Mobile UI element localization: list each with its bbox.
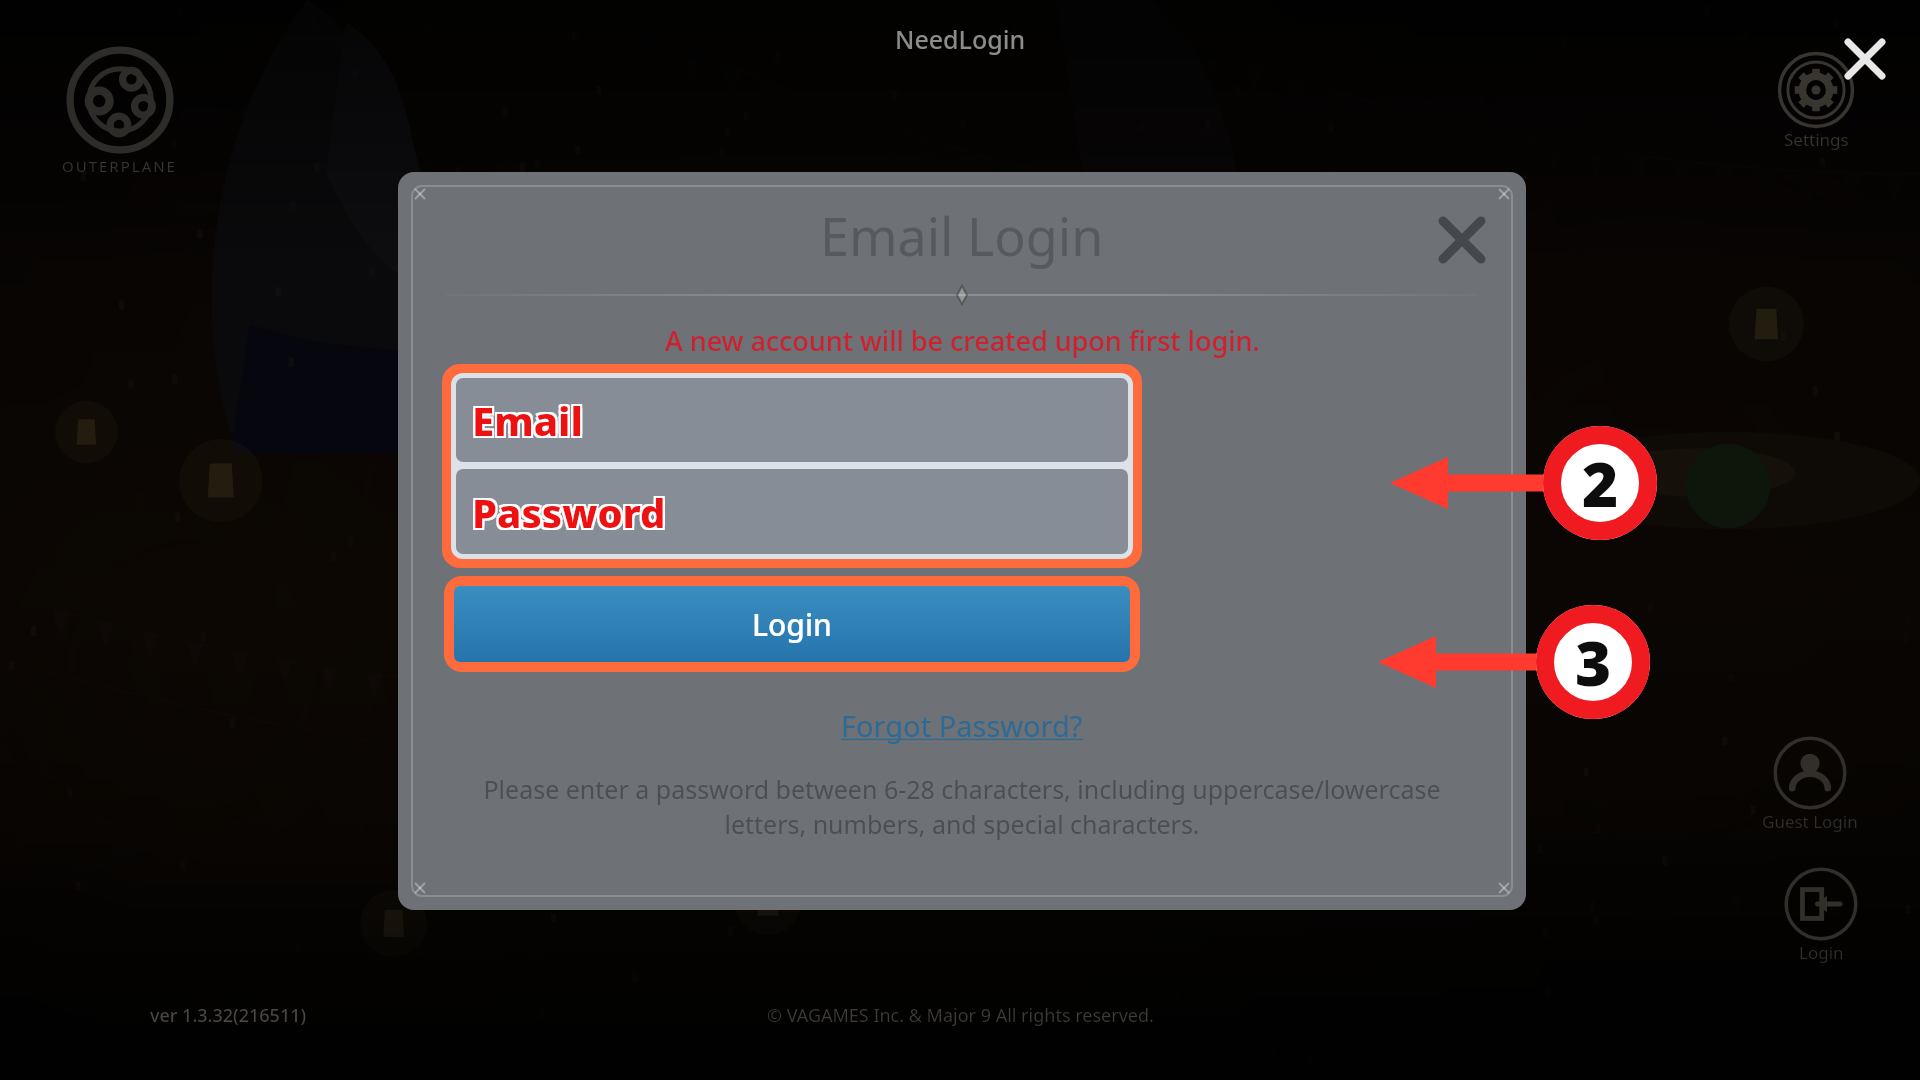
staticText: Email — [470, 395, 581, 449]
button[interactable]: Guest Login — [1756, 730, 1864, 839]
staticText: Email — [474, 395, 585, 449]
button[interactable]: Close — [1838, 32, 1892, 86]
staticText: Password — [474, 487, 668, 541]
staticText: Forgot Password? — [841, 706, 1083, 745]
staticText: Login — [752, 604, 832, 645]
staticText: Email — [474, 391, 585, 445]
staticText: © VAGAMES Inc. & Major 9 All rights rese… — [767, 1003, 1154, 1028]
button[interactable]: Email — [456, 378, 1128, 462]
staticText: Email Login — [820, 200, 1104, 271]
staticText: Please enter a password between 6-28 cha… — [450, 772, 1474, 842]
staticText: Password — [470, 483, 664, 537]
button[interactable]: Password — [456, 469, 1128, 554]
staticText: 3 — [1575, 620, 1612, 704]
staticText: Password — [474, 483, 668, 537]
staticText: 2 — [1582, 441, 1619, 525]
staticText: Password — [472, 485, 666, 539]
button[interactable]: Login — [1778, 861, 1864, 970]
staticText: Guest Login — [1762, 810, 1858, 833]
staticText: Email — [470, 391, 581, 445]
staticText: Settings — [1784, 128, 1849, 151]
button[interactable]: Close dialog — [1432, 210, 1492, 270]
staticText: ver 1.3.32(216511) — [150, 1003, 307, 1028]
staticText: Email — [472, 393, 583, 447]
staticText: A new account will be created upon first… — [665, 322, 1260, 359]
staticText: Login — [1799, 941, 1844, 964]
staticText: OUTERPLANE — [62, 156, 177, 176]
staticText: Password — [470, 487, 664, 541]
button[interactable]: Settings — [1772, 46, 1860, 157]
staticText: NeedLogin — [895, 22, 1026, 56]
button[interactable]: Forgot Password? — [831, 702, 1093, 749]
button[interactable]: Login — [454, 586, 1130, 662]
